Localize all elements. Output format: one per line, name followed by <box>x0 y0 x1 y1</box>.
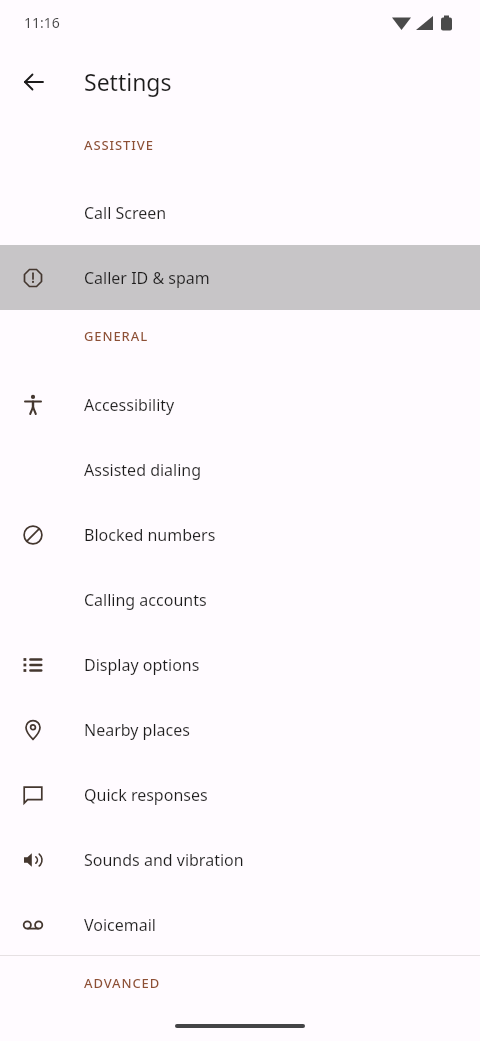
staticText: Voicemail <box>84 914 156 936</box>
staticText: ASSISTIVE <box>84 136 154 154</box>
staticText: Display options <box>84 654 200 676</box>
button[interactable]: Nearby places <box>0 697 480 762</box>
button[interactable]: Back <box>10 58 58 106</box>
button[interactable]: Call Screen <box>0 180 480 245</box>
button[interactable]: Blocked numbers <box>0 502 480 567</box>
staticText: Call Screen <box>84 202 167 224</box>
staticText: GENERAL <box>84 327 148 345</box>
staticText: Sounds and vibration <box>84 849 244 871</box>
staticText: ADVANCED <box>84 974 161 992</box>
button[interactable]: Assisted dialing <box>0 437 480 502</box>
button[interactable]: Caller ID & spam <box>0 245 480 310</box>
button[interactable]: Calling accounts <box>0 567 480 632</box>
staticText: Accessibility <box>84 394 175 416</box>
button[interactable]: Quick responses <box>0 762 480 827</box>
button[interactable]: Sounds and vibration <box>0 827 480 892</box>
button[interactable]: Voicemail <box>0 892 480 957</box>
staticText: Calling accounts <box>84 589 207 611</box>
button[interactable]: Display options <box>0 632 480 697</box>
staticText: Blocked numbers <box>84 524 216 546</box>
staticText: Nearby places <box>84 719 190 741</box>
staticText: 11:16 <box>24 13 60 32</box>
staticText: Quick responses <box>84 784 208 806</box>
staticText: Caller ID & spam <box>84 267 210 289</box>
staticText: Assisted dialing <box>84 459 202 481</box>
button[interactable]: Accessibility <box>0 372 480 437</box>
staticText: Settings <box>84 66 172 97</box>
